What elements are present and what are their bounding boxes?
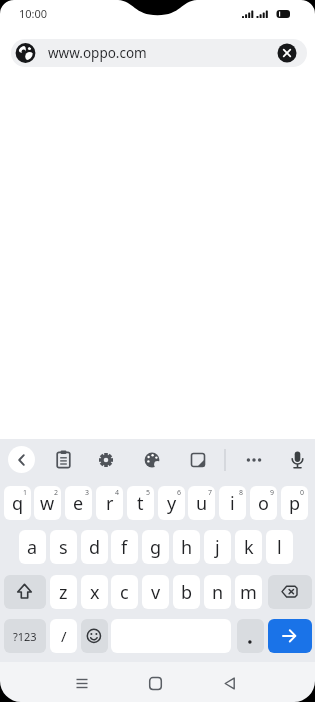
- button[interactable]: e: [65, 486, 92, 520]
- button[interactable]: [137, 664, 177, 700]
- button[interactable]: k: [235, 530, 262, 564]
- staticText: /: [61, 626, 67, 646]
- staticText: v: [151, 580, 161, 605]
- staticText: b: [181, 580, 193, 605]
- staticText: 6: [177, 488, 182, 498]
- button[interactable]: w: [34, 486, 61, 520]
- button[interactable]: [211, 664, 251, 700]
- button[interactable]: [62, 664, 102, 700]
- staticText: y: [167, 491, 177, 516]
- button[interactable]: ?123: [4, 619, 46, 653]
- staticText: e: [73, 491, 84, 516]
- staticText: 8: [239, 488, 244, 498]
- staticText: c: [120, 580, 129, 605]
- button[interactable]: j: [204, 530, 231, 564]
- staticText: k: [244, 535, 254, 560]
- button[interactable]: q: [4, 486, 31, 520]
- button[interactable]: d: [81, 530, 108, 564]
- button[interactable]: [8, 446, 35, 473]
- staticText: u: [196, 491, 208, 516]
- button[interactable]: z: [50, 575, 77, 609]
- staticText: o: [258, 491, 269, 516]
- staticText: www.oppo.com: [48, 44, 147, 62]
- staticText: h: [181, 535, 193, 560]
- button[interactable]: h: [173, 530, 200, 564]
- button[interactable]: m: [235, 575, 262, 609]
- button[interactable]: g: [142, 530, 169, 564]
- button[interactable]: /: [50, 619, 77, 653]
- button[interactable]: t: [127, 486, 154, 520]
- button[interactable]: o: [250, 486, 277, 520]
- staticText: 7: [208, 488, 213, 498]
- staticText: z: [59, 580, 68, 605]
- staticText: 9: [270, 488, 275, 498]
- staticText: d: [89, 535, 101, 560]
- button[interactable]: x: [81, 575, 108, 609]
- staticText: 0: [300, 488, 305, 498]
- staticText: ?123: [13, 629, 37, 644]
- staticText: 5: [146, 488, 151, 498]
- staticText: s: [59, 535, 68, 560]
- staticText: w: [40, 491, 55, 516]
- staticText: i: [230, 491, 235, 516]
- button[interactable]: y: [158, 486, 185, 520]
- button[interactable]: l: [266, 530, 293, 564]
- staticText: p: [289, 491, 301, 516]
- staticText: n: [212, 580, 224, 605]
- button[interactable]: v: [142, 575, 169, 609]
- button[interactable]: c: [111, 575, 138, 609]
- button[interactable]: www.oppo.com: [11, 39, 307, 67]
- staticText: q: [12, 491, 24, 516]
- staticText: 10:00: [19, 6, 48, 21]
- staticText: f: [121, 535, 128, 560]
- button[interactable]: r: [96, 486, 123, 520]
- staticText: m: [240, 580, 257, 605]
- button[interactable]: b: [173, 575, 200, 609]
- staticText: 1: [23, 488, 28, 498]
- button[interactable]: [4, 575, 46, 609]
- button[interactable]: p: [281, 486, 308, 520]
- staticText: 2: [54, 488, 59, 498]
- staticText: l: [277, 535, 282, 560]
- button[interactable]: [237, 619, 264, 653]
- staticText: g: [150, 535, 162, 560]
- button[interactable]: f: [111, 530, 138, 564]
- button[interactable]: n: [204, 575, 231, 609]
- staticText: a: [27, 535, 38, 560]
- staticText: 3: [85, 488, 90, 498]
- button[interactable]: s: [50, 530, 77, 564]
- staticText: t: [137, 491, 144, 516]
- button[interactable]: [268, 575, 312, 609]
- staticText: j: [215, 535, 220, 560]
- button[interactable]: [268, 619, 312, 653]
- button[interactable]: [81, 619, 108, 653]
- button[interactable]: u: [188, 486, 215, 520]
- staticText: x: [90, 580, 100, 605]
- staticText: 4: [115, 488, 120, 498]
- staticText: r: [106, 491, 114, 516]
- button[interactable]: i: [219, 486, 246, 520]
- button[interactable]: a: [19, 530, 46, 564]
